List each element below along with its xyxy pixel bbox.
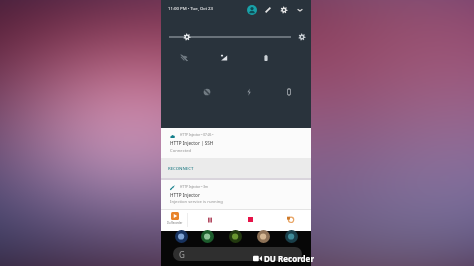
button[interactable]: Wi-Fi (178, 52, 190, 64)
staticText: G (179, 249, 185, 260)
button[interactable]: Do not disturb (201, 86, 213, 98)
button[interactable]: Camera (257, 230, 270, 243)
staticText: DU Recorder (264, 253, 314, 264)
staticText: HTTP Injector • 07:26 • (180, 133, 214, 137)
button[interactable]: Edit tiles (263, 5, 273, 15)
button[interactable]: Expand (295, 5, 305, 15)
staticText: 11:00 PM • Tue, Oct 23 (168, 5, 213, 11)
button[interactable]: HTTP Injector • 3m (161, 180, 311, 209)
staticText: HTTP Injector (170, 192, 200, 198)
button[interactable]: RECONNECT (161, 158, 311, 178)
staticText: Injection service is running (170, 199, 223, 205)
button[interactable]: Auto rotate (283, 86, 295, 98)
staticText: RECONNECT (168, 165, 194, 171)
button[interactable]: User account (247, 5, 257, 15)
staticText: HTTP Injector • 3m (180, 185, 208, 189)
button[interactable]: Flashlight (243, 86, 255, 98)
button[interactable]: Mobile data (218, 52, 230, 64)
staticText: Du Recorder (167, 221, 183, 225)
button[interactable]: Pause (203, 213, 216, 226)
button[interactable]: Browser (285, 230, 298, 243)
button[interactable]: Du Recorder (165, 212, 185, 225)
button[interactable]: HTTP Injector • 07:26 • (161, 128, 311, 158)
button[interactable]: Screenshot (284, 213, 297, 226)
button[interactable]: Maps (229, 230, 242, 243)
button[interactable]: Messages (201, 230, 214, 243)
button[interactable]: Phone (175, 230, 188, 243)
button[interactable]: Settings (279, 5, 289, 15)
button[interactable]: Brightness settings (298, 33, 306, 41)
button[interactable]: Battery saver (260, 52, 272, 64)
button[interactable]: Search (173, 247, 302, 261)
staticText: Connected (170, 148, 192, 154)
button[interactable]: Stop (244, 213, 257, 226)
staticText: HTTP Injector | SSH (170, 140, 214, 146)
